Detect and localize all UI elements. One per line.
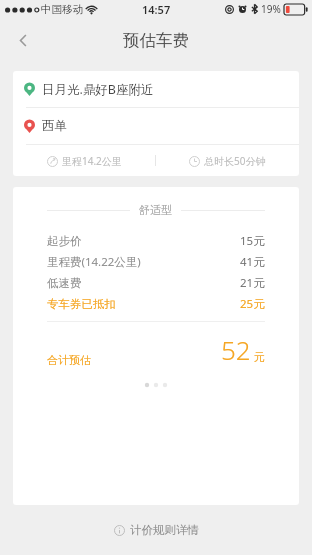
staticText: 总时长50分钟 (204, 154, 266, 168)
staticText: 西单 (42, 118, 67, 134)
staticText: 舒适型 (139, 203, 172, 217)
staticText: 预估车费 (123, 30, 189, 51)
staticText: 元 (254, 350, 265, 364)
staticText: 41元 (240, 254, 265, 270)
staticText: 里程14.2公里 (62, 154, 122, 168)
staticText: 计价规则详情 (130, 523, 199, 537)
staticText: 15元 (240, 233, 265, 249)
staticText: 起步价 (47, 234, 82, 248)
staticText: 中国移动 (41, 3, 83, 16)
staticText: 21元 (240, 275, 265, 291)
staticText: 专车券已抵扣 (47, 297, 116, 311)
button[interactable]: 西单 (13, 108, 299, 144)
staticText: 25元 (240, 296, 265, 312)
staticText: 低速费 (47, 276, 82, 290)
button[interactable]: Back (7, 24, 39, 56)
button[interactable]: 日月光.鼎好B座附近 (13, 71, 299, 107)
staticText: 日月光.鼎好B座附近 (42, 81, 154, 98)
staticText: 19% (261, 2, 281, 16)
staticText: 52 (221, 332, 251, 367)
staticText: 14:57 (142, 2, 171, 17)
staticText: 合计预估 (47, 353, 91, 367)
staticText: 里程费(14.22公里) (47, 254, 141, 270)
button[interactable]: 计价规则详情 (0, 519, 312, 541)
